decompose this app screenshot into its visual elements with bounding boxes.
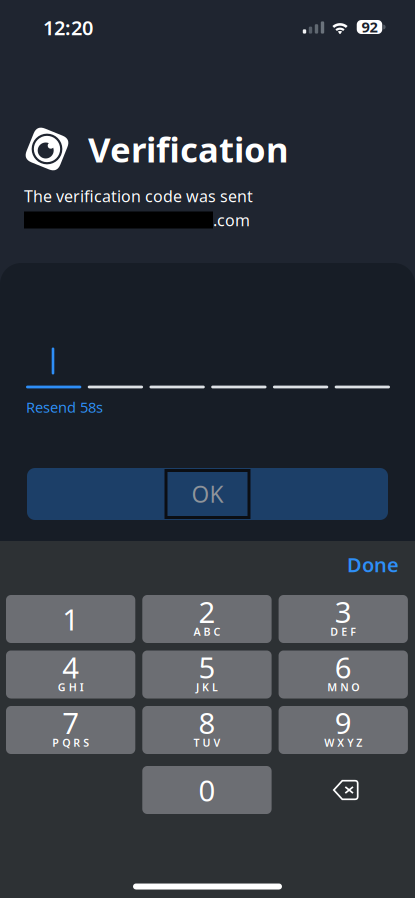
staticText: G H I: [58, 680, 84, 694]
staticText: T U V: [193, 735, 220, 750]
staticText: Done: [347, 551, 399, 578]
staticText: 0: [198, 770, 215, 809]
button[interactable]: 8: [142, 706, 272, 754]
button[interactable]: Verification code: [26, 330, 390, 390]
staticText: 7: [62, 703, 79, 742]
button[interactable]: 5: [142, 650, 272, 698]
button[interactable]: 0: [142, 766, 272, 814]
button[interactable]: Delete: [279, 766, 408, 814]
button[interactable]: Done: [333, 541, 413, 588]
staticText: 12:20: [43, 14, 93, 41]
button[interactable]: 4: [6, 650, 135, 698]
staticText: A B C: [193, 624, 220, 639]
staticText: OK: [191, 479, 223, 509]
staticText: 6: [335, 647, 352, 686]
staticText: J K L: [196, 680, 218, 694]
button[interactable]: OK: [27, 468, 388, 520]
button[interactable]: 7: [6, 706, 135, 754]
staticText: Resend 58s: [26, 397, 103, 417]
staticText: D E F: [330, 624, 356, 639]
staticText: .com: [213, 209, 250, 231]
staticText: 3: [335, 592, 352, 631]
staticText: M N O: [327, 680, 359, 694]
button[interactable]: 9: [279, 706, 408, 754]
button[interactable]: 1: [6, 595, 135, 643]
staticText: W X Y Z: [324, 735, 362, 750]
staticText: 1: [62, 599, 79, 638]
button[interactable]: 6: [279, 650, 408, 698]
button[interactable]: Resend 58s: [25, 392, 104, 422]
staticText: 5: [198, 647, 215, 686]
staticText: 2: [198, 592, 215, 631]
staticText: 92: [361, 17, 377, 37]
button[interactable]: 2: [142, 595, 272, 643]
staticText: 8: [198, 703, 215, 742]
staticText: 4: [62, 647, 79, 686]
button[interactable]: 3: [279, 595, 408, 643]
staticText: The verification code was sent: [24, 185, 253, 207]
staticText: P Q R S: [52, 735, 89, 750]
staticText: Verification: [88, 126, 289, 172]
staticText: 9: [335, 703, 352, 742]
